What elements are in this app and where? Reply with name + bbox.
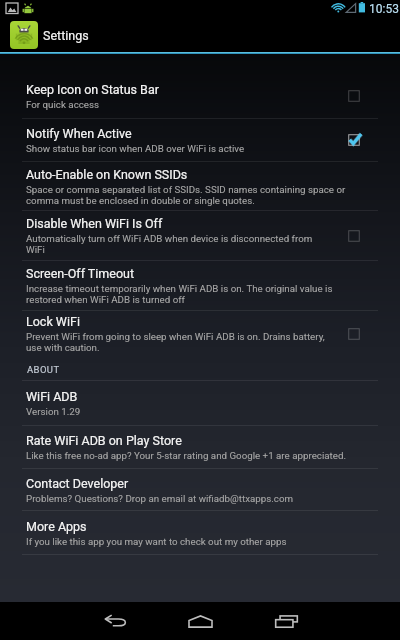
button[interactable]: Recent apps	[260, 603, 312, 639]
staticText: If you like this app you may want to che…	[26, 536, 287, 547]
staticText: 10:53	[369, 2, 399, 16]
button[interactable]: Screen-Off Timeout	[0, 261, 400, 310]
staticText: Space or comma separated list of SSIDs. …	[26, 184, 346, 195]
button[interactable]: More Apps	[0, 511, 400, 554]
button[interactable]: Keep Icon on Status Bar	[0, 74, 400, 118]
staticText: Disable When WiFi Is Off	[26, 216, 163, 231]
staticText: WiFi	[26, 244, 45, 255]
staticText: Problems? Questions? Drop an email at wi…	[26, 493, 294, 504]
staticText: More Apps	[26, 519, 87, 534]
staticText: Increase timeout temporarily when WiFi A…	[26, 283, 333, 294]
staticText: Settings	[43, 28, 89, 43]
staticText: Lock WiFi	[26, 314, 80, 329]
button[interactable]: Rate WiFi ADB on Play Store	[0, 426, 400, 468]
staticText: Prevent WiFi from going to sleep when Wi…	[26, 331, 325, 342]
staticText: Show status bar icon when ADB over WiFi …	[26, 143, 245, 154]
staticText: Automatically turn off WiFi ADB when dev…	[26, 233, 313, 244]
staticText: Keep Icon on Status Bar	[26, 82, 159, 97]
staticText: Rate WiFi ADB on Play Store	[26, 433, 182, 448]
staticText: Auto-Enable on Known SSIDs	[26, 167, 188, 182]
staticText: ABOUT	[27, 364, 60, 375]
button[interactable]: Notify When Active	[0, 119, 400, 161]
button[interactable]: Lock WiFi	[0, 311, 400, 356]
button[interactable]: Home	[174, 603, 226, 639]
button[interactable]: WiFi ADB	[0, 381, 400, 425]
staticText: restored when WiFi ADB is turned off	[26, 294, 185, 305]
button[interactable]: Back	[89, 603, 141, 639]
staticText: For quick access	[26, 99, 100, 110]
staticText: use with caution.	[26, 342, 100, 353]
staticText: Screen-Off Timeout	[26, 266, 135, 281]
staticText: Notify When Active	[26, 126, 132, 141]
staticText: WiFi ADB	[26, 389, 78, 404]
button[interactable]: Contact Developer	[0, 469, 400, 510]
staticText: comma must be enclosed in double or sing…	[26, 195, 255, 206]
staticText: Contact Developer	[26, 476, 129, 491]
staticText: Like this free no-ad app? Your 5-star ra…	[26, 450, 347, 461]
button[interactable]: Disable When WiFi Is Off	[0, 211, 400, 260]
staticText: Version 1.29	[26, 406, 81, 417]
other: WiFi ADB	[10, 21, 38, 49]
button[interactable]: Auto-Enable on Known SSIDs	[0, 162, 400, 210]
